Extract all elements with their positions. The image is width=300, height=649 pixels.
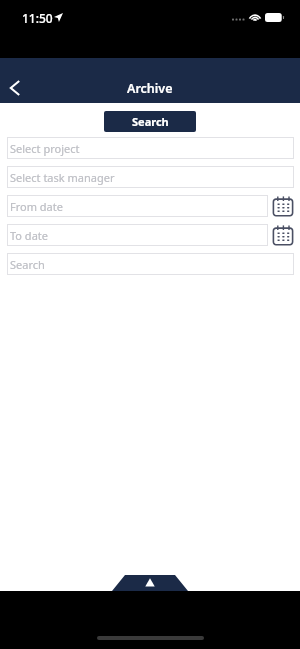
staticText: Search: [10, 257, 45, 272]
button[interactable]: Select project: [7, 137, 294, 159]
staticText: Select project: [10, 141, 80, 156]
staticText: 11:50: [22, 10, 53, 26]
staticText: From date: [10, 199, 63, 214]
staticText: Archive: [127, 80, 173, 97]
button[interactable]: Search: [104, 111, 196, 132]
button[interactable]: Select task manager: [7, 166, 294, 188]
button[interactable]: Pick date: [272, 195, 294, 217]
button[interactable]: Back: [1, 74, 29, 102]
staticText: Search: [132, 114, 169, 129]
button[interactable]: Search: [7, 253, 294, 275]
staticText: To date: [10, 228, 48, 243]
button[interactable]: From date: [7, 195, 268, 217]
button[interactable]: Pick date: [272, 224, 294, 246]
button[interactable]: To date: [7, 224, 268, 246]
staticText: Select task manager: [10, 170, 115, 185]
button[interactable]: Expand: [0, 575, 300, 591]
